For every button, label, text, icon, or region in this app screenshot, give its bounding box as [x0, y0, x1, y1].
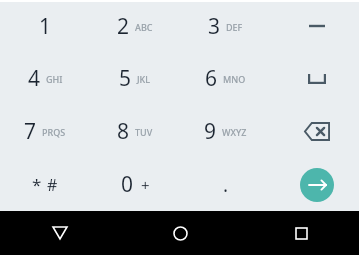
staticText: 6 [205, 64, 218, 93]
staticText: JKL [137, 73, 151, 85]
button[interactable]: Dash [271, 0, 362, 52]
staticText: ABC [135, 21, 153, 33]
staticText: . [223, 172, 229, 198]
staticText: DEF [226, 21, 243, 33]
staticText: 2 [117, 12, 130, 41]
staticText: WXYZ [222, 126, 247, 138]
button[interactable]: 5 [90, 52, 180, 105]
staticText: 5 [119, 64, 132, 93]
staticText: * [32, 173, 42, 196]
button[interactable]: 2 [90, 0, 180, 52]
staticText: TUV [135, 126, 153, 138]
button[interactable]: . [180, 158, 271, 211]
button[interactable]: * [0, 158, 90, 211]
button[interactable]: Backspace [271, 105, 362, 158]
button[interactable]: 3 [180, 0, 271, 52]
button[interactable]: 7 [0, 105, 90, 158]
staticText: 1 [39, 12, 52, 41]
button[interactable]: 0 [90, 158, 180, 211]
staticText: GHI [46, 73, 63, 85]
staticText: PRQS [42, 126, 66, 138]
button[interactable]: Recents [241, 211, 362, 255]
staticText: 7 [24, 117, 37, 146]
staticText: # [47, 174, 58, 196]
staticText: 9 [204, 117, 217, 146]
button[interactable]: 6 [180, 52, 271, 105]
staticText: 4 [28, 64, 41, 93]
staticText: 0 [121, 170, 134, 199]
button[interactable]: 1 [0, 0, 90, 52]
button[interactable]: 8 [90, 105, 180, 158]
button[interactable]: Back [0, 211, 120, 255]
button[interactable]: 9 [180, 105, 271, 158]
button[interactable]: Space [271, 52, 362, 105]
staticText: 3 [208, 12, 221, 41]
staticText: 8 [117, 117, 130, 146]
staticText: MNO [223, 73, 246, 85]
button[interactable]: 4 [0, 52, 90, 105]
button[interactable]: Enter [300, 168, 334, 202]
staticText: + [141, 175, 150, 195]
button[interactable]: Home [120, 211, 241, 255]
